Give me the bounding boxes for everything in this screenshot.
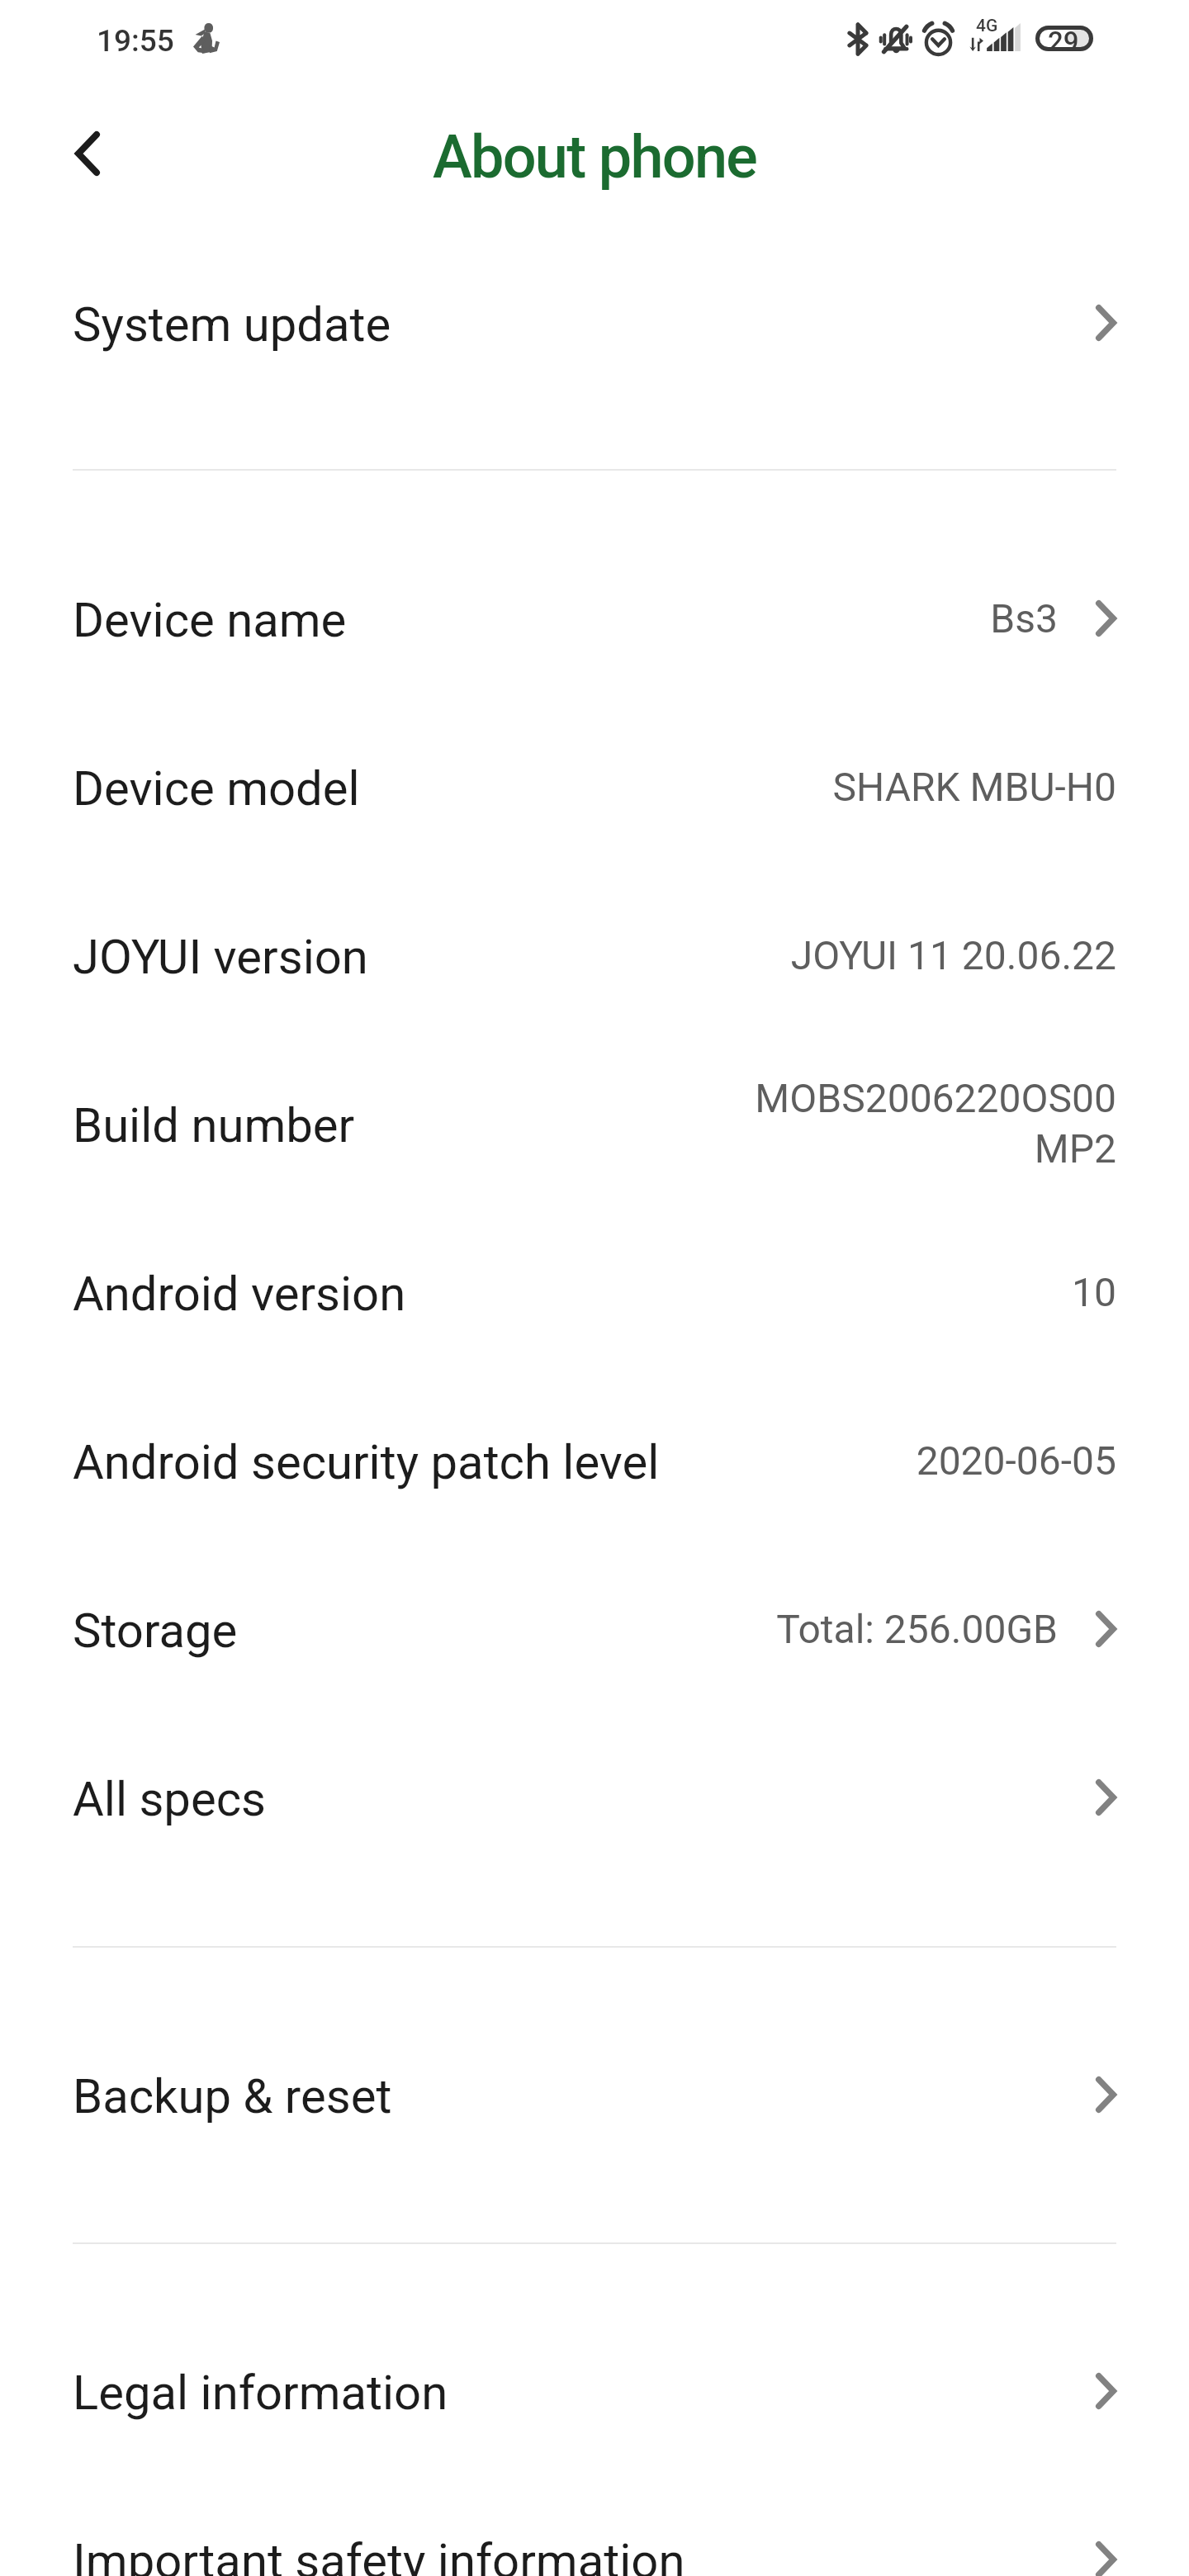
staticText: JOYUI 11 20.06.22 [790, 932, 1116, 978]
button[interactable]: Important safety information [0, 2477, 1189, 2576]
staticText: Storage [73, 1603, 238, 1659]
staticText: Legal information [73, 2365, 448, 2421]
button[interactable]: Legal information [0, 2308, 1189, 2477]
staticText: Total: 256.00GB [776, 1606, 1058, 1652]
staticText: MOBS2006220OS00 MP2 [755, 1075, 1116, 1172]
staticText: Bs3 [990, 595, 1058, 642]
staticText: 10 [1072, 1269, 1116, 1315]
button[interactable]: Device model [0, 704, 1189, 873]
staticText: All specs [73, 1771, 266, 1827]
button[interactable]: System update [0, 240, 1189, 409]
staticText: Device model [73, 760, 360, 817]
staticText: Build number [73, 1097, 355, 1153]
staticText: 4G [976, 16, 998, 36]
staticText: 29 [1048, 26, 1079, 58]
staticText: Backup & reset [73, 2068, 392, 2124]
button[interactable]: Device name [0, 536, 1189, 704]
button[interactable]: JOYUI version [0, 873, 1189, 1041]
staticText: Android security patch level [73, 1434, 660, 1490]
staticText: System update [73, 296, 391, 353]
button[interactable]: Backup & reset [0, 2012, 1189, 2181]
staticText: About phone [0, 122, 1189, 192]
button[interactable]: Build number [0, 1041, 1189, 1210]
staticText: SHARK MBU-H0 [832, 764, 1116, 810]
button[interactable]: Storage [0, 1546, 1189, 1715]
staticText: JOYUI version [73, 929, 368, 985]
button[interactable]: All specs [0, 1715, 1189, 1883]
button[interactable]: Back [44, 111, 131, 197]
staticText: 19:55 [97, 23, 174, 59]
button[interactable]: Android security patch level [0, 1378, 1189, 1546]
button[interactable]: Android version [0, 1210, 1189, 1378]
staticText: Device name [73, 592, 347, 648]
staticText: Important safety information [73, 2533, 685, 2576]
staticText: Android version [73, 1266, 406, 1322]
staticText: 2020-06-05 [916, 1437, 1116, 1484]
